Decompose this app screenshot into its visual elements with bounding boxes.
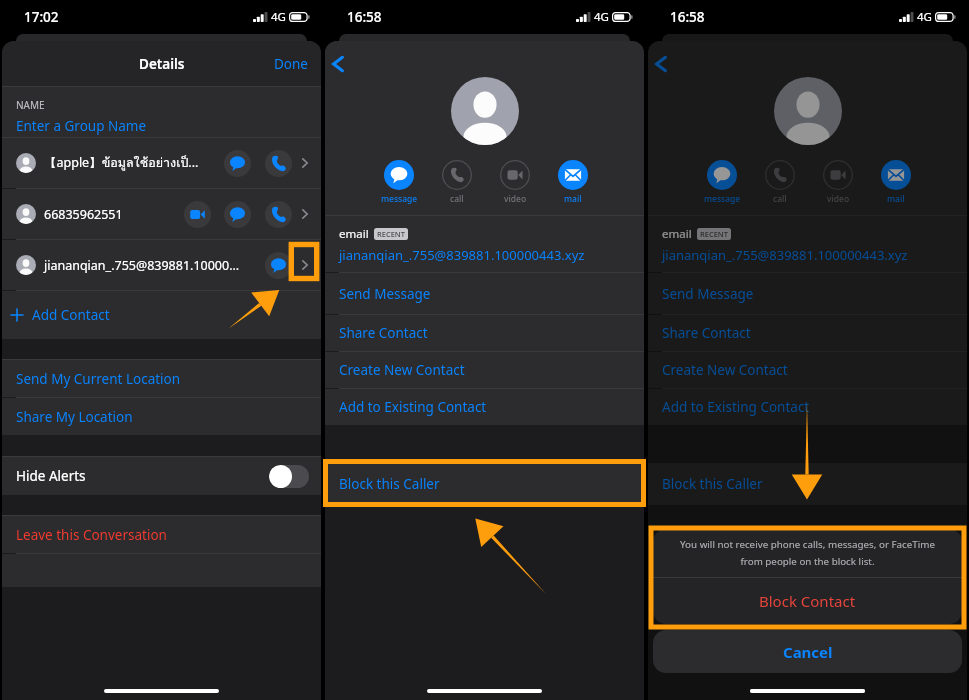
button[interactable]: 【apple】ข้อมูลใช้อย่างเป็... (2, 138, 321, 188)
button[interactable]: Call (265, 201, 292, 228)
staticText: jiananqian_.755@839881.100000443.xyz (339, 246, 585, 264)
staticText: 16:58 (670, 8, 705, 26)
button[interactable]: video (808, 160, 868, 205)
staticText: 4G (271, 9, 286, 25)
staticText: mail (887, 193, 905, 205)
button[interactable]: Add to Existing Contact (648, 389, 967, 425)
button[interactable]: Send Message (325, 273, 644, 314)
button[interactable]: Share Contact (325, 315, 644, 351)
staticText: Create New Contact (662, 361, 788, 379)
staticText: Block Contact (759, 591, 856, 611)
staticText: Block this Caller (662, 475, 763, 493)
staticText: 66835962551 (44, 206, 123, 223)
staticText: You will not receive phone calls, messag… (653, 538, 962, 551)
staticText: 【apple】ข้อมูลใช้อย่างเป็... (44, 153, 199, 173)
button[interactable]: Open details (295, 255, 315, 275)
button[interactable]: Block Contact (653, 578, 962, 624)
staticText: 16:58 (347, 8, 382, 26)
button[interactable]: message (369, 160, 429, 205)
staticText: Send My Current Location (16, 370, 181, 388)
button[interactable]: Open details (295, 204, 315, 224)
button[interactable]: call (427, 160, 487, 205)
staticText: message (381, 193, 418, 205)
staticText: 4G (917, 9, 932, 25)
button[interactable]: Hide Alerts (2, 457, 321, 495)
staticText: NAME (16, 98, 45, 112)
staticText: email (339, 226, 369, 242)
staticText: from people on the block list. (653, 555, 962, 568)
button[interactable]: jiananqian_.755@839881.10000... (2, 240, 321, 290)
staticText: video (827, 193, 850, 205)
staticText: Done (274, 55, 308, 73)
staticText: call (450, 193, 464, 205)
button[interactable]: Open details (295, 153, 315, 173)
staticText: Send Message (339, 285, 431, 303)
button[interactable]: Send Message (648, 273, 967, 314)
staticText: mail (564, 193, 582, 205)
staticText: 4G (594, 9, 609, 25)
button[interactable]: email (648, 216, 967, 272)
button[interactable]: 66835962551 (2, 189, 321, 239)
button[interactable]: message (692, 160, 752, 205)
staticText: Add to Existing Contact (339, 398, 487, 416)
button[interactable]: video (485, 160, 545, 205)
staticText: Details (139, 55, 185, 73)
staticText: jiananqian_.755@839881.10000... (44, 257, 240, 274)
button[interactable]: Leave this Conversation (2, 516, 321, 553)
button[interactable]: email (325, 216, 644, 272)
staticText: Cancel (783, 642, 833, 662)
button[interactable]: Message (224, 150, 251, 177)
button[interactable]: Share Contact (648, 315, 967, 351)
button[interactable]: Add Contact (2, 291, 321, 339)
staticText: RECENT (377, 229, 405, 239)
button[interactable]: Add to Existing Contact (325, 389, 644, 425)
button[interactable]: Block this Caller (325, 463, 644, 505)
button[interactable]: Done (261, 46, 321, 82)
staticText: Share Contact (339, 324, 428, 342)
button[interactable]: Create New Contact (325, 352, 644, 388)
button[interactable]: Back (649, 52, 673, 76)
staticText: Leave this Conversation (16, 526, 167, 544)
button[interactable]: mail (543, 160, 603, 205)
staticText: Create New Contact (339, 361, 465, 379)
staticText: jiananqian_.755@839881.100000443.xyz (662, 246, 908, 264)
button[interactable]: Call (265, 150, 292, 177)
staticText: Block this Caller (339, 475, 440, 493)
button[interactable]: Block this Caller (648, 463, 967, 505)
staticText: video (504, 193, 527, 205)
button[interactable]: Message (224, 201, 251, 228)
staticText: Hide Alerts (16, 467, 86, 485)
button[interactable]: call (750, 160, 810, 205)
button[interactable]: Send My Current Location (2, 360, 321, 397)
button[interactable]: Back (326, 52, 350, 76)
staticText: 17:02 (24, 8, 59, 26)
staticText: call (773, 193, 787, 205)
button[interactable]: Video call (184, 201, 211, 228)
button[interactable]: Share My Location (2, 398, 321, 435)
button[interactable]: mail (866, 160, 926, 205)
staticText: Share Contact (662, 324, 751, 342)
button[interactable]: Cancel (653, 630, 962, 673)
staticText: Send Message (662, 285, 754, 303)
staticText: message (704, 193, 741, 205)
staticText: Add Contact (32, 306, 110, 324)
button[interactable]: Message (265, 252, 292, 279)
staticText: RECENT (700, 229, 728, 239)
staticText: email (662, 226, 692, 242)
staticText: Add to Existing Contact (662, 398, 810, 416)
staticText: Enter a Group Name (16, 117, 147, 135)
staticText: Share My Location (16, 408, 133, 426)
button[interactable]: Create New Contact (648, 352, 967, 388)
